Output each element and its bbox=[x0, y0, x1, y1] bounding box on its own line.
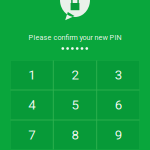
button[interactable]: 3 bbox=[97, 60, 139, 89]
button[interactable]: 8 bbox=[54, 120, 96, 149]
staticText: 2 bbox=[71, 67, 78, 83]
button[interactable]: 7 bbox=[10, 120, 53, 149]
staticText: 4 bbox=[28, 97, 35, 113]
button[interactable]: 9 bbox=[97, 120, 139, 149]
staticText: 3 bbox=[115, 67, 122, 83]
button[interactable]: 2 bbox=[54, 60, 96, 89]
staticText: 7 bbox=[28, 127, 35, 143]
staticText: 1 bbox=[28, 67, 35, 83]
button[interactable]: 1 bbox=[10, 60, 53, 89]
button[interactable]: 5 bbox=[54, 90, 96, 119]
staticText: 6 bbox=[115, 97, 122, 113]
staticText: Please confirm your new PIN bbox=[28, 33, 121, 42]
button[interactable]: 4 bbox=[10, 90, 53, 119]
staticText: 9 bbox=[115, 127, 122, 143]
staticText: 5 bbox=[71, 97, 78, 113]
button[interactable]: 6 bbox=[97, 90, 139, 119]
staticText: 8 bbox=[71, 127, 78, 143]
